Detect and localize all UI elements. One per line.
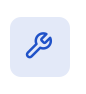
button[interactable]: Tools — [10, 17, 70, 77]
